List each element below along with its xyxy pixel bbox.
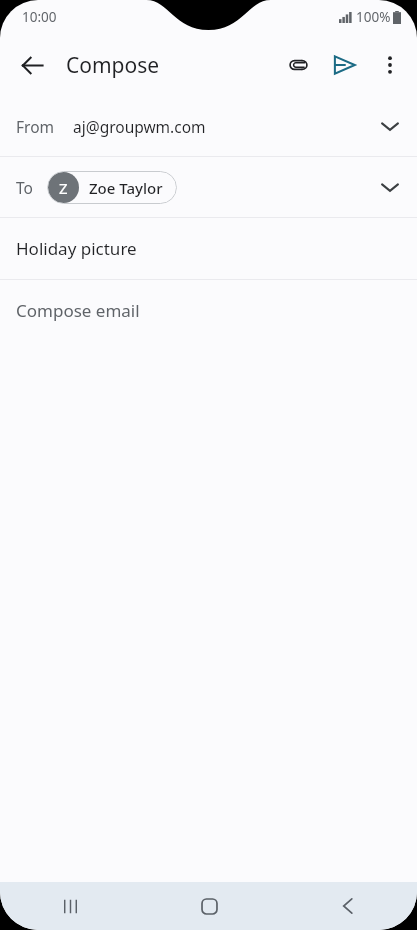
button[interactable]: Send [321,42,367,88]
button[interactable]: From [0,96,417,156]
button[interactable]: Home [169,882,249,930]
button[interactable]: To [0,157,417,217]
staticText: Compose [66,51,160,80]
staticText: Holiday picture [16,237,137,260]
staticText: Z [59,178,68,198]
staticText: 100% [356,8,391,26]
staticText: From [16,116,55,137]
button[interactable]: Holiday picture [0,218,417,279]
button[interactable]: More options [367,42,413,88]
staticText: Zoe Taylor [89,178,163,198]
button[interactable]: Compose email [0,280,417,340]
button[interactable]: Z [47,171,177,204]
button[interactable]: Back [8,41,56,89]
button[interactable]: Recent apps [30,882,110,930]
staticText: To [16,177,33,198]
staticText: aj@groupwm.com [73,116,206,137]
staticText: Compose email [16,299,140,322]
button[interactable]: Back [308,882,388,930]
button[interactable]: Attach file [275,42,321,88]
staticText: 10:00 [22,8,57,26]
